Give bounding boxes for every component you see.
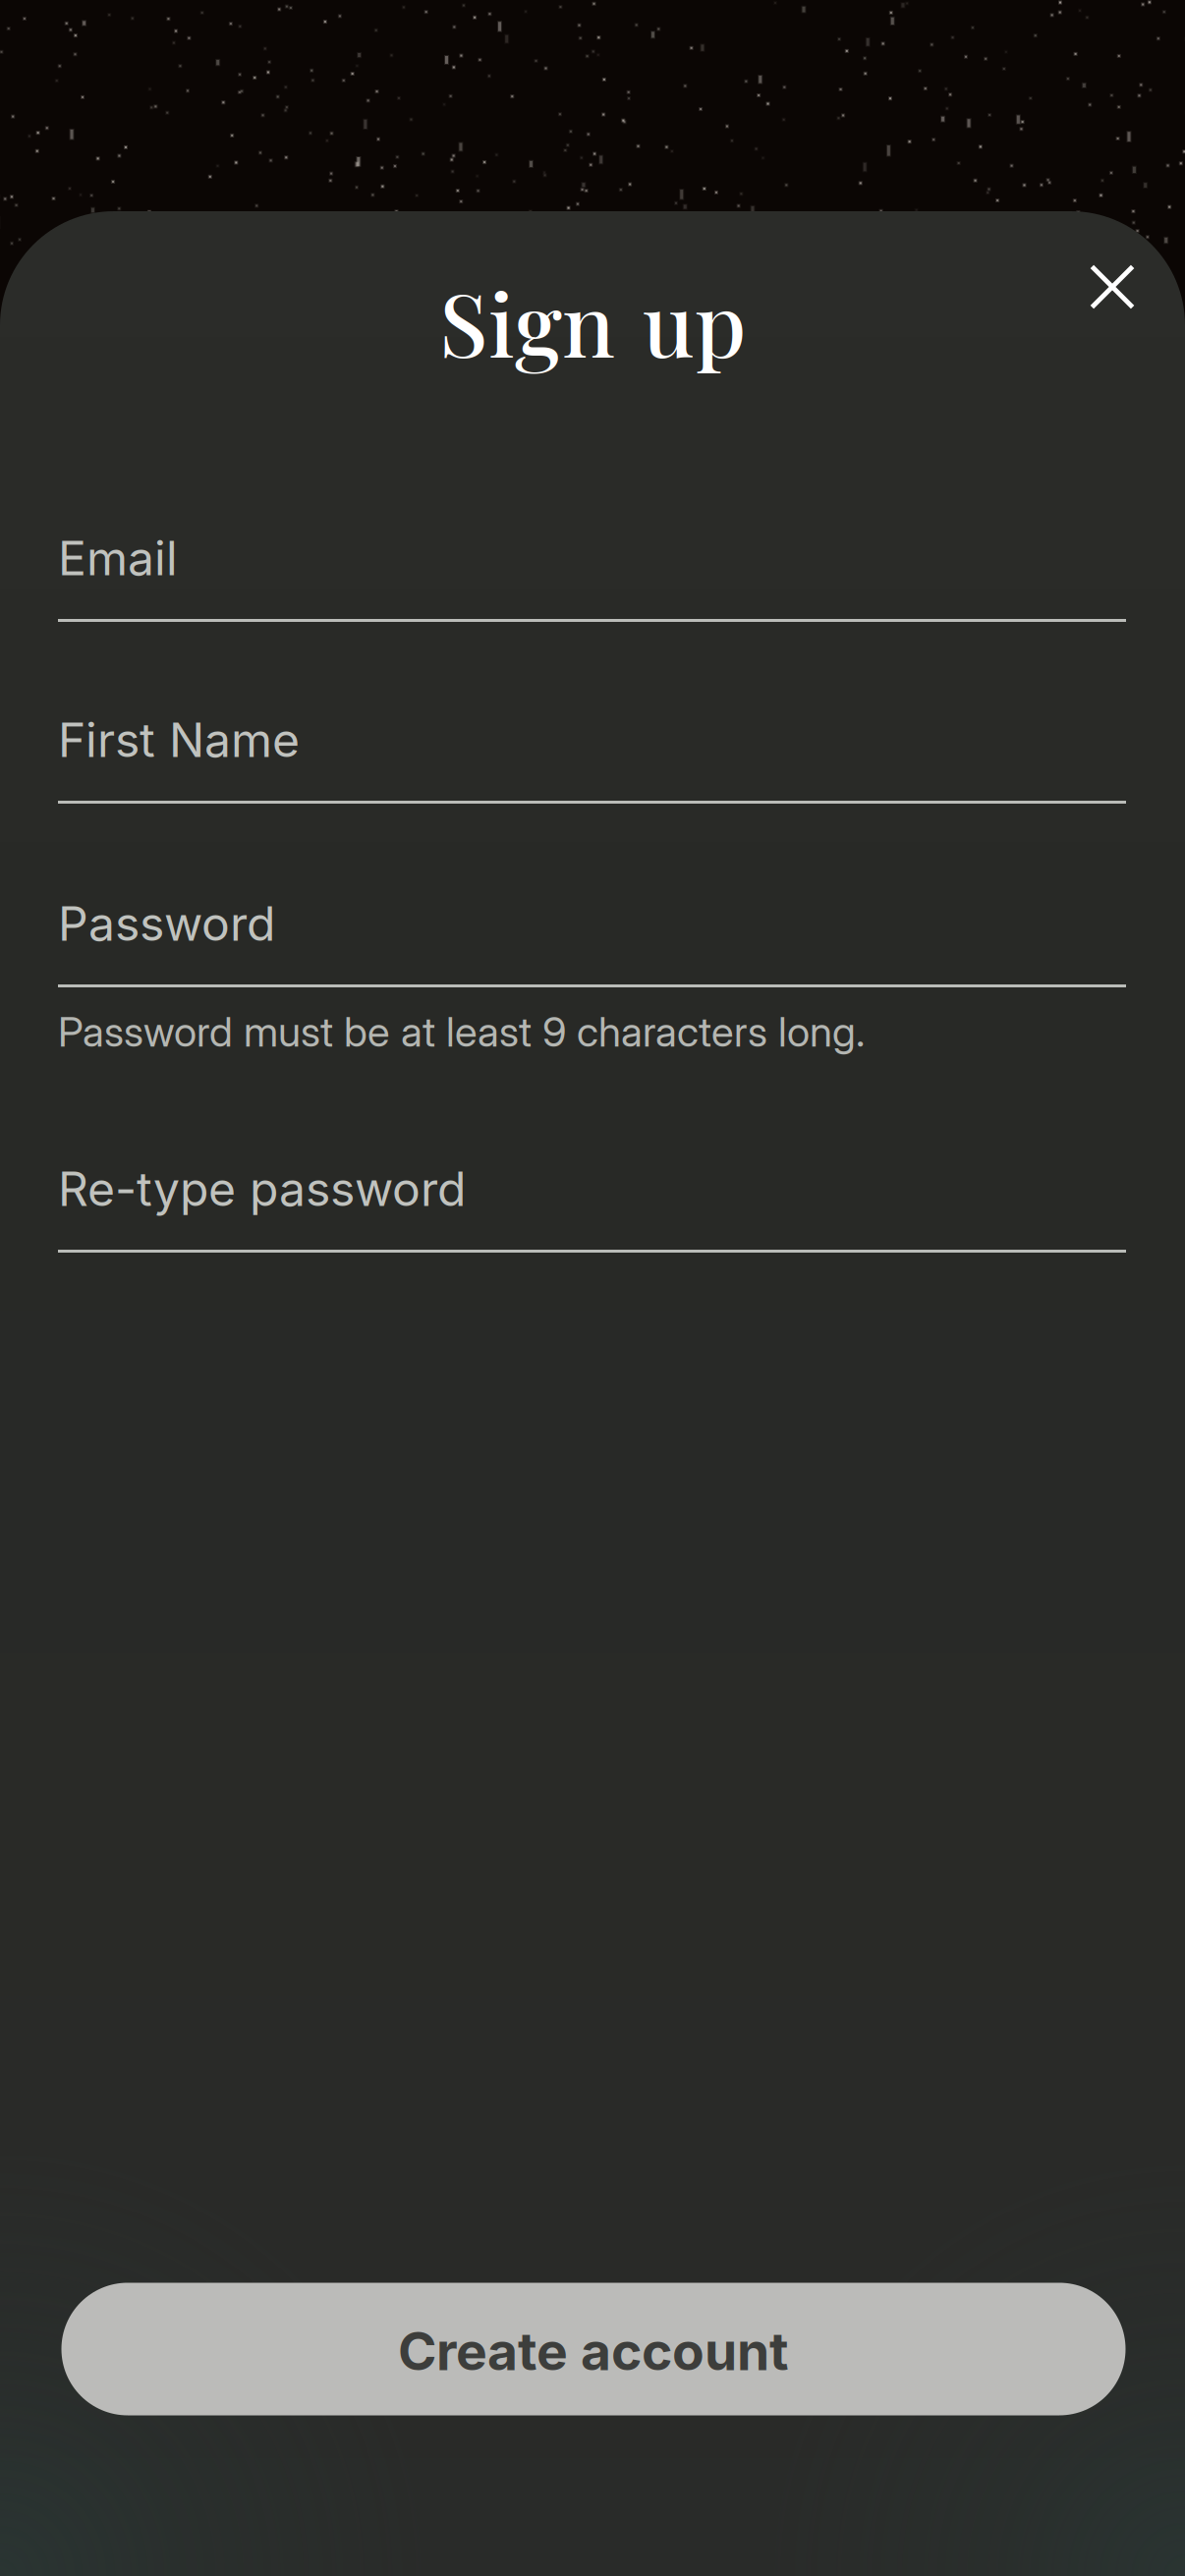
- staticText: Sign up: [439, 263, 746, 380]
- button[interactable]: Password: [58, 893, 1126, 987]
- button[interactable]: Close: [1057, 232, 1167, 342]
- staticText: Re-type password: [58, 1160, 466, 1217]
- staticText: Password: [58, 895, 275, 952]
- button[interactable]: Re-type password: [58, 1158, 1126, 1253]
- staticText: First Name: [58, 711, 300, 768]
- staticText: Create account: [398, 2319, 789, 2383]
- button[interactable]: Email: [58, 528, 1126, 622]
- button[interactable]: First Name: [58, 709, 1126, 804]
- button[interactable]: Create account: [61, 2283, 1126, 2415]
- staticText: Password must be at least 9 characters l…: [58, 1007, 865, 1057]
- staticText: Email: [58, 530, 178, 587]
